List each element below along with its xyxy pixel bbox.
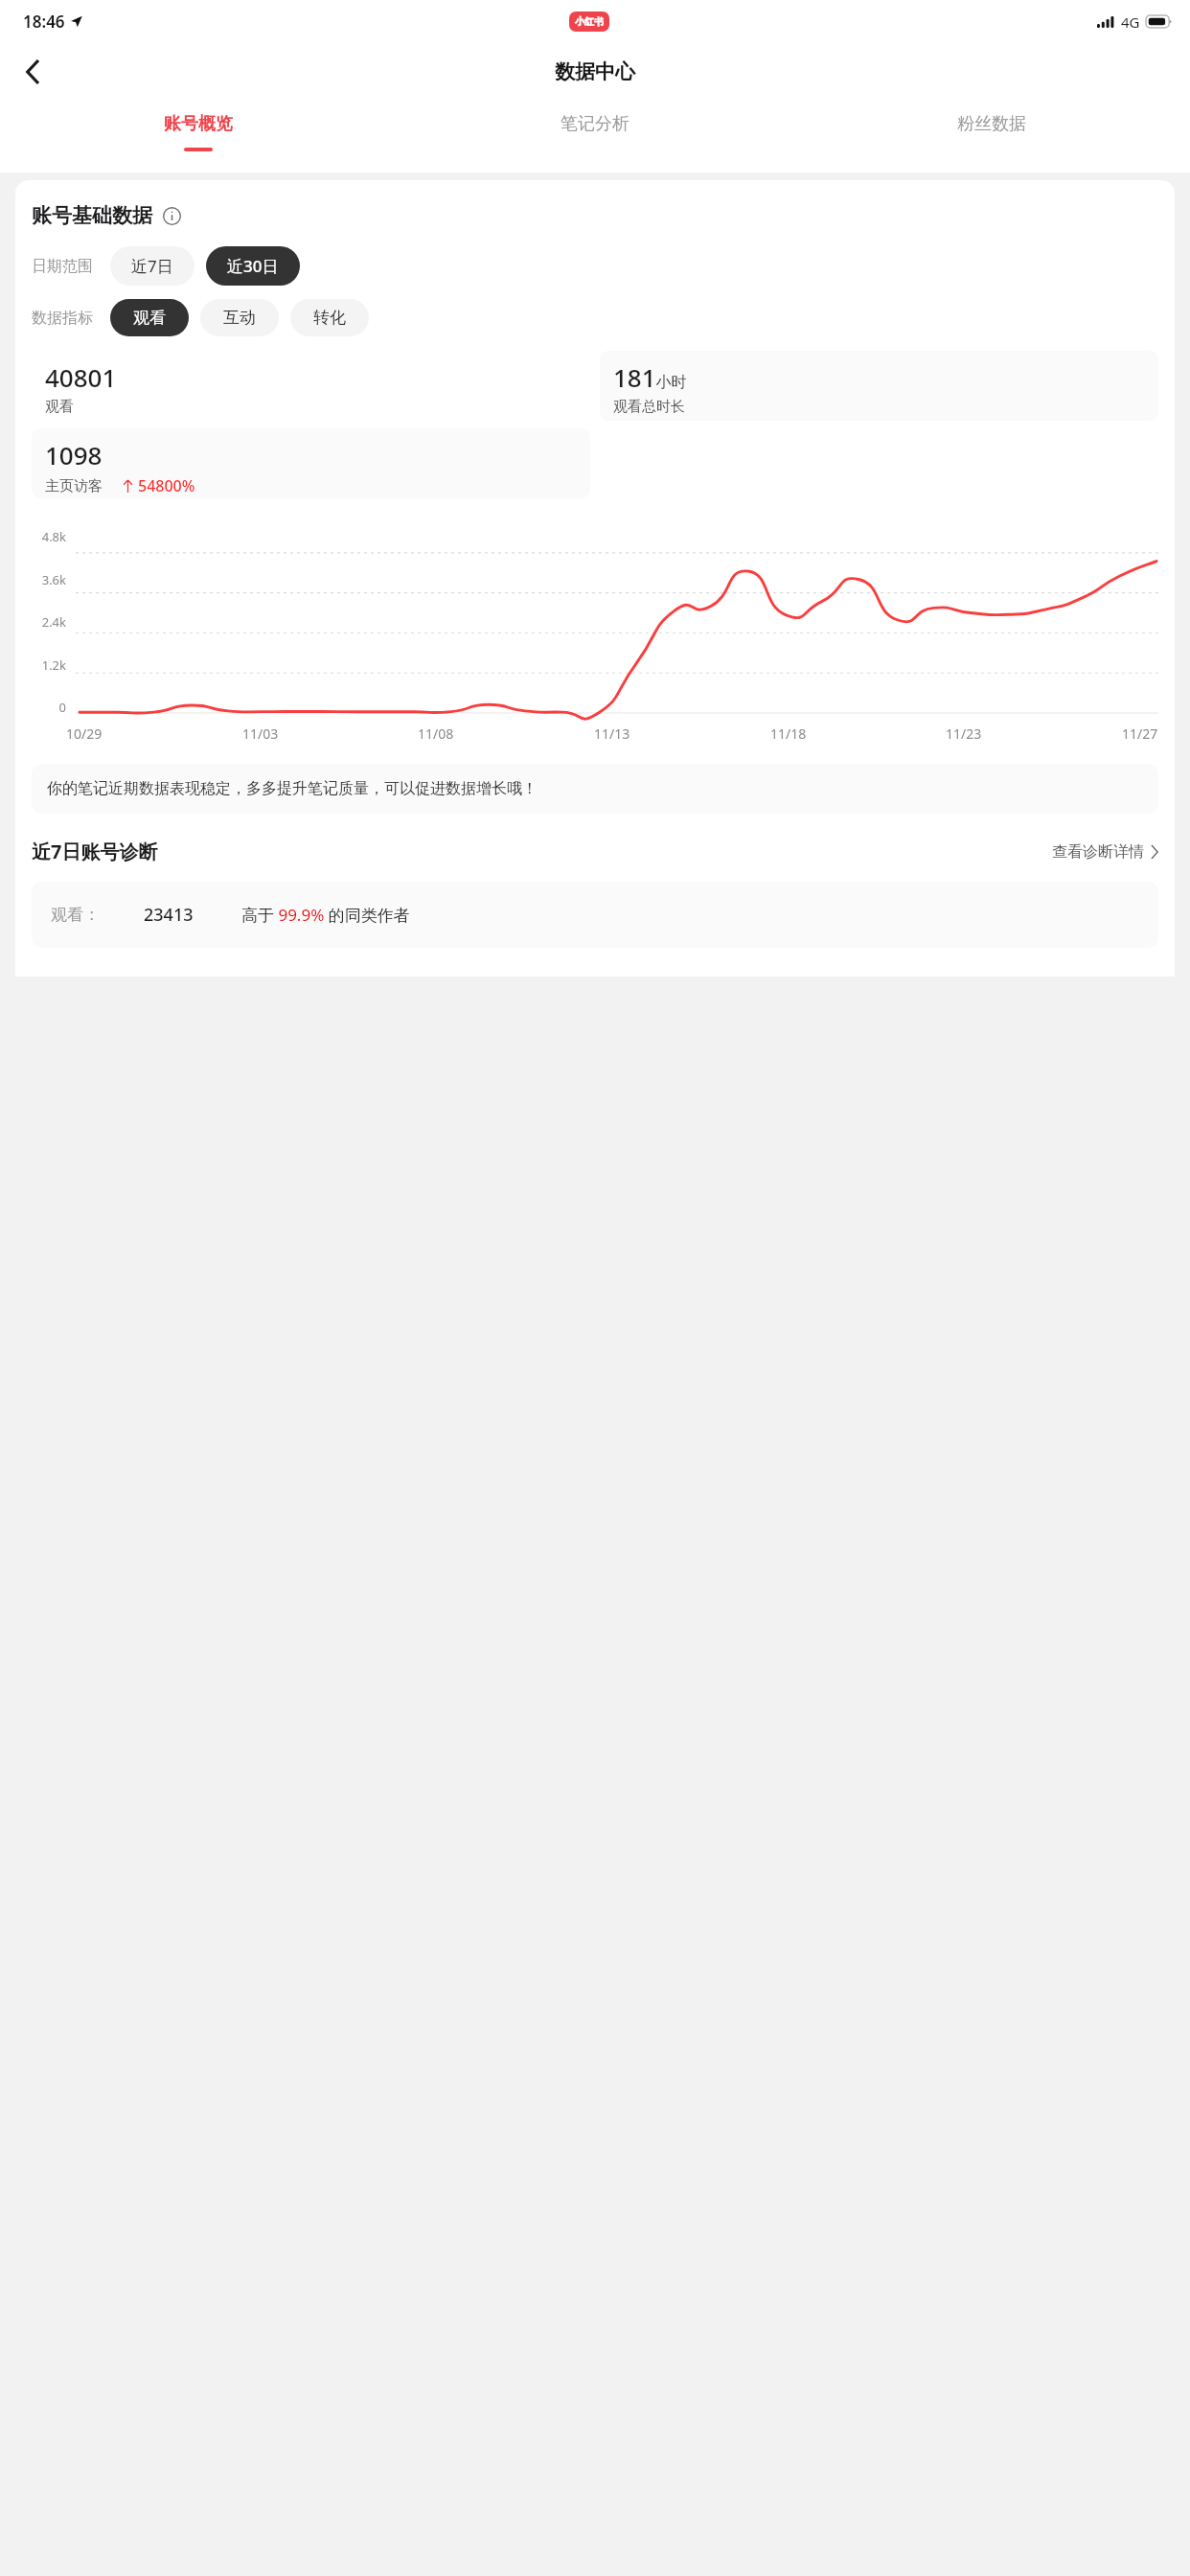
- staticText: 1.2k: [41, 656, 66, 674]
- staticText: 4.8k: [41, 528, 66, 545]
- staticText: 11/13: [594, 724, 630, 743]
- staticText: 23413: [144, 903, 194, 927]
- button[interactable]: 观看: [110, 299, 189, 336]
- staticText: 账号概览: [164, 113, 233, 135]
- button[interactable]: 粉丝数据: [793, 102, 1190, 148]
- button[interactable]: 181小时: [600, 351, 1158, 421]
- staticText: 11/18: [770, 724, 807, 743]
- button[interactable]: 转化: [290, 299, 369, 336]
- staticText: 主页访客: [45, 477, 103, 495]
- button[interactable]: 互动: [200, 299, 279, 336]
- button[interactable]: 查看诊断详情: [1052, 842, 1158, 862]
- staticText: 10/29: [66, 724, 103, 743]
- staticText: 笔记分析: [561, 113, 629, 135]
- staticText: 数据中心: [555, 59, 635, 84]
- staticText: 粉丝数据: [957, 113, 1026, 135]
- staticText: 观看：: [51, 905, 100, 925]
- staticText: 2.4k: [41, 613, 66, 631]
- staticText: 40801: [45, 360, 117, 394]
- staticText: 近30日: [227, 255, 279, 277]
- button[interactable]: 观看：: [32, 882, 1158, 948]
- staticText: 11/27: [1122, 724, 1158, 743]
- button[interactable]: 1098: [32, 428, 590, 498]
- staticText: 你的笔记近期数据表现稳定，多多提升笔记质量，可以促进数据增长哦！: [47, 779, 538, 798]
- staticText: 近7日账号诊断: [32, 839, 158, 864]
- staticText: 11/03: [242, 724, 279, 743]
- button[interactable]: 笔记分析: [397, 102, 793, 148]
- staticText: 18:46: [23, 11, 65, 33]
- staticText: 观看总时长: [613, 398, 685, 416]
- staticText: 互动: [223, 308, 256, 328]
- staticText: 3.6k: [41, 571, 66, 588]
- staticText: 观看: [133, 308, 166, 328]
- button[interactable]: 账号概览: [0, 102, 397, 151]
- staticText: 181小时: [613, 360, 687, 394]
- staticText: 数据指标: [32, 309, 93, 328]
- staticText: 11/23: [946, 724, 982, 743]
- button[interactable]: 40801: [32, 351, 590, 421]
- button[interactable]: 近30日: [206, 246, 300, 286]
- staticText: 11/08: [418, 724, 454, 743]
- staticText: 近7日: [131, 255, 173, 277]
- button[interactable]: Back: [10, 49, 56, 95]
- staticText: 转化: [313, 308, 346, 328]
- staticText: 观看: [45, 398, 74, 416]
- staticText: 小红书: [575, 15, 604, 28]
- button[interactable]: 近7日: [110, 246, 195, 286]
- button[interactable]: Info: [162, 206, 182, 226]
- staticText: 日期范围: [32, 257, 93, 276]
- staticText: 54800%: [138, 475, 195, 496]
- staticText: 1098: [45, 438, 103, 471]
- staticText: 0: [58, 699, 66, 716]
- staticText: 高于 99.9% 的同类作者: [241, 904, 410, 926]
- staticText: 4G: [1121, 12, 1140, 32]
- staticText: 账号基础数据: [32, 203, 152, 228]
- staticText: 查看诊断详情: [1052, 842, 1144, 862]
